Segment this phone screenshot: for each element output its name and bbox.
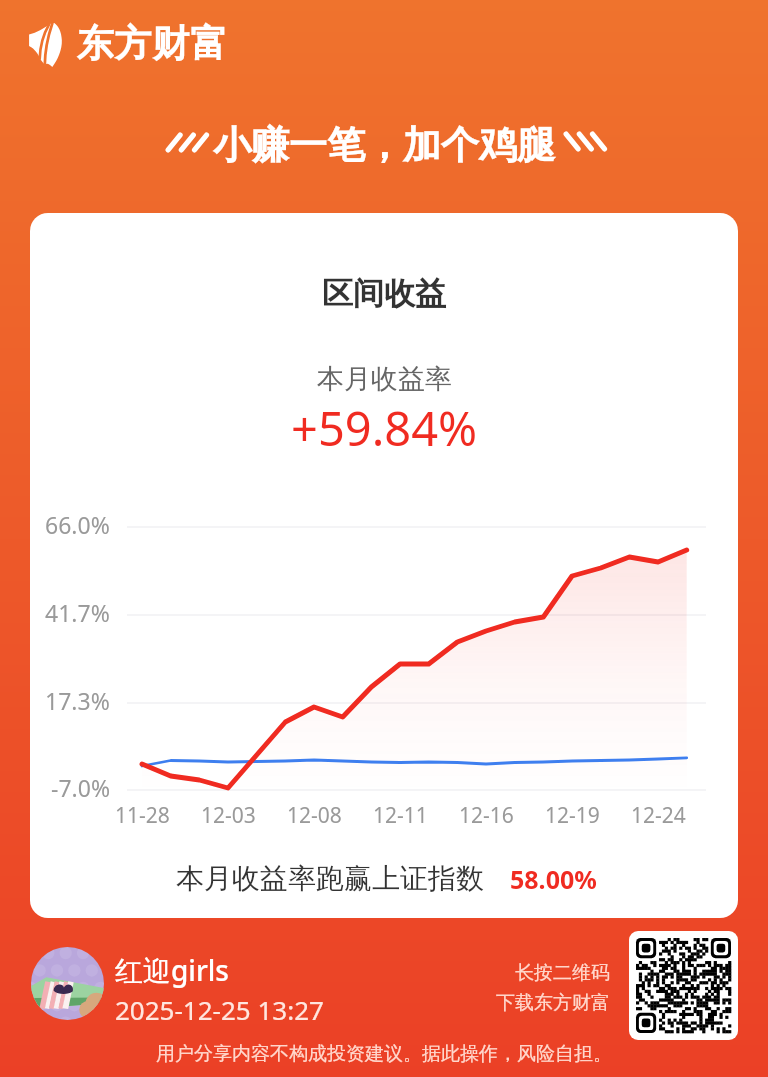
staticText: 12-24 [631, 801, 686, 830]
staticText: 2025-12-25 13:27 [115, 992, 324, 1027]
staticText: 长按二维码 [515, 961, 610, 985]
staticText: 本月收益率 [317, 362, 452, 396]
staticText: 区间收益 [322, 274, 446, 313]
staticText: +59.84% [291, 396, 478, 460]
staticText: 12-11 [373, 801, 428, 830]
button[interactable]: 二维码 [629, 931, 738, 1040]
staticText: 小赚一笔，加个鸡腿 [213, 121, 555, 169]
staticText: 红迎girls [115, 951, 229, 989]
staticText: 东方财富 [76, 20, 228, 67]
button[interactable]: 东方财富 [28, 20, 228, 67]
staticText: 11-28 [115, 801, 170, 830]
staticText: 下载东方财富 [496, 991, 610, 1015]
staticText: -7.0% [51, 772, 110, 803]
staticText: 12-16 [459, 801, 514, 830]
staticText: 12-03 [201, 801, 256, 830]
staticText: 66.0% [45, 509, 110, 540]
staticText: 12-08 [287, 801, 342, 830]
staticText: 用户分享内容不构成投资建议。据此操作，风险自担。 [156, 1042, 612, 1066]
staticText: 12-19 [545, 801, 600, 830]
staticText: 58.00% [510, 862, 597, 896]
staticText: 41.7% [45, 597, 110, 628]
staticText: 本月收益率跑赢上证指数 [176, 861, 484, 896]
staticText: 17.3% [45, 685, 110, 716]
